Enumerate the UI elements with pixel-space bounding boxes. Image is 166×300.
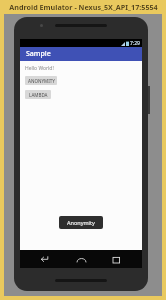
staticText: 7:29 [130,40,140,47]
staticText: Android Emulator - Nexus_5X_API_17:5554 [9,2,158,12]
staticText: Sample [26,49,51,59]
button[interactable]: LAMBDA [25,90,51,99]
button[interactable]: ANONYMITY [25,76,57,85]
button[interactable]: Back [34,250,56,268]
staticText: ANONYMITY [28,78,55,84]
staticText: Hello World! [25,65,54,72]
staticText: Anonymity [67,219,95,226]
button[interactable]: Recents [106,250,128,268]
staticText: LAMBDA [29,92,48,98]
button[interactable]: Home [70,250,92,268]
